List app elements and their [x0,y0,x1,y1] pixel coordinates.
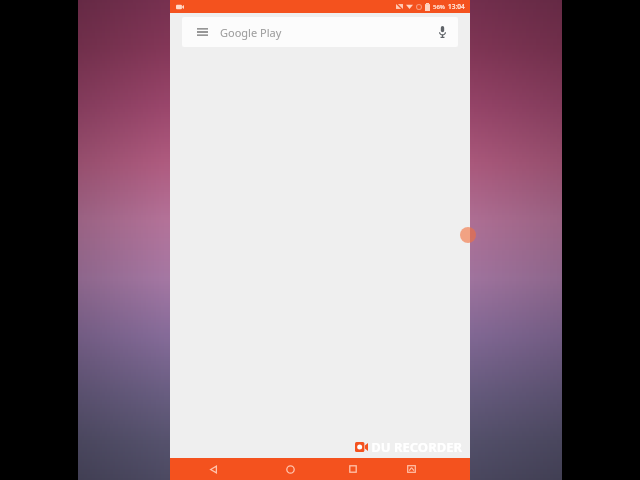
staticText: DU RECORDER [371,438,462,456]
button[interactable]: Screenshot [383,458,440,480]
button[interactable]: Open navigation drawer [182,17,458,47]
button[interactable]: Open navigation drawer [192,22,212,42]
staticText: 56% [433,3,445,11]
button[interactable]: Recorder controls [460,227,476,243]
button[interactable]: Back [170,458,257,480]
button[interactable]: Home [257,458,323,480]
button[interactable]: Recent apps [323,458,383,480]
button[interactable]: Search by voice [430,20,454,44]
staticText: Google Play [220,25,282,40]
staticText: 13:04 [448,2,465,11]
